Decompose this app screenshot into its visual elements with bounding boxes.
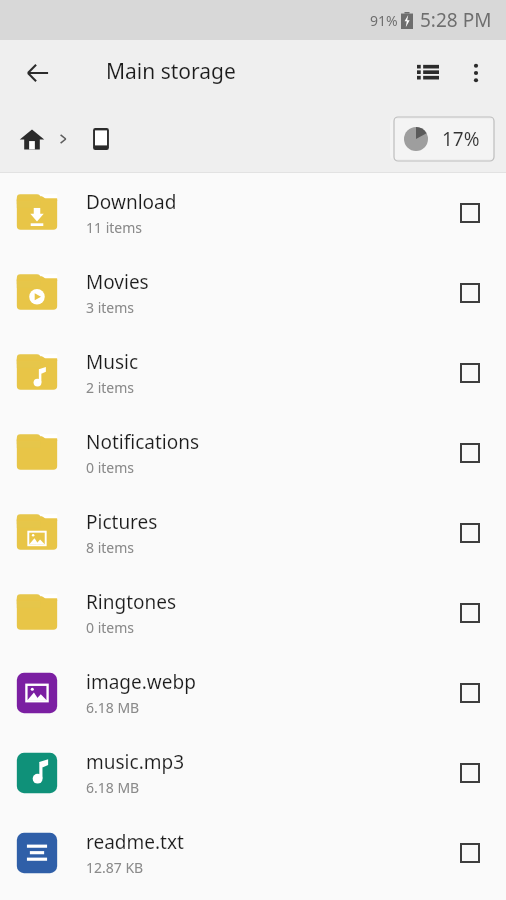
staticText: 0 items (86, 458, 135, 477)
button[interactable]: music.mp3 (0, 733, 506, 813)
staticText: Movies (86, 269, 149, 295)
staticText: 5:28 PM (420, 7, 492, 33)
button[interactable]: Select Notifications (448, 431, 492, 475)
button[interactable]: Select Music (448, 351, 492, 395)
staticText: music.mp3 (86, 749, 185, 775)
button[interactable]: Back (14, 49, 62, 97)
staticText: 3 items (86, 298, 135, 317)
staticText: 2 items (86, 378, 135, 397)
button[interactable]: Movies (0, 253, 506, 333)
staticText: 6.18 MB (86, 698, 140, 717)
button[interactable]: Ringtones (0, 573, 506, 653)
button[interactable]: Notifications (0, 413, 506, 493)
button[interactable]: readme.txt (0, 813, 506, 893)
staticText: 17% (442, 126, 480, 152)
button[interactable]: View mode (404, 49, 452, 97)
staticText: readme.txt (86, 829, 184, 855)
staticText: 0 items (86, 618, 135, 637)
button[interactable]: Select music.mp3 (448, 751, 492, 795)
staticText: 6.18 MB (86, 778, 140, 797)
staticText: Notifications (86, 429, 200, 455)
button[interactable]: Select readme.txt (448, 831, 492, 875)
button[interactable]: Download (0, 173, 506, 253)
button[interactable]: Select Movies (448, 271, 492, 315)
staticText: 91% (370, 11, 398, 30)
staticText: Pictures (86, 509, 158, 535)
button[interactable]: Select Ringtones (448, 591, 492, 635)
button[interactable]: Music (0, 333, 506, 413)
staticText: Ringtones (86, 589, 177, 615)
staticText: Music (86, 349, 139, 375)
staticText: 8 items (86, 538, 135, 557)
staticText: Download (86, 189, 177, 215)
button[interactable]: Pictures (0, 493, 506, 573)
button[interactable]: Home (12, 119, 52, 159)
button[interactable]: Select Download (448, 191, 492, 235)
button[interactable]: 17% (390, 119, 494, 159)
staticText: 12.87 KB (86, 858, 144, 877)
staticText: image.webp (86, 669, 196, 695)
button[interactable]: image.webp (0, 653, 506, 733)
button[interactable]: Main storage (82, 120, 120, 158)
staticText: Main storage (106, 57, 236, 86)
staticText: 11 items (86, 218, 143, 237)
button[interactable]: Select Pictures (448, 511, 492, 555)
button[interactable]: More options (452, 49, 500, 97)
button[interactable]: Select image.webp (448, 671, 492, 715)
